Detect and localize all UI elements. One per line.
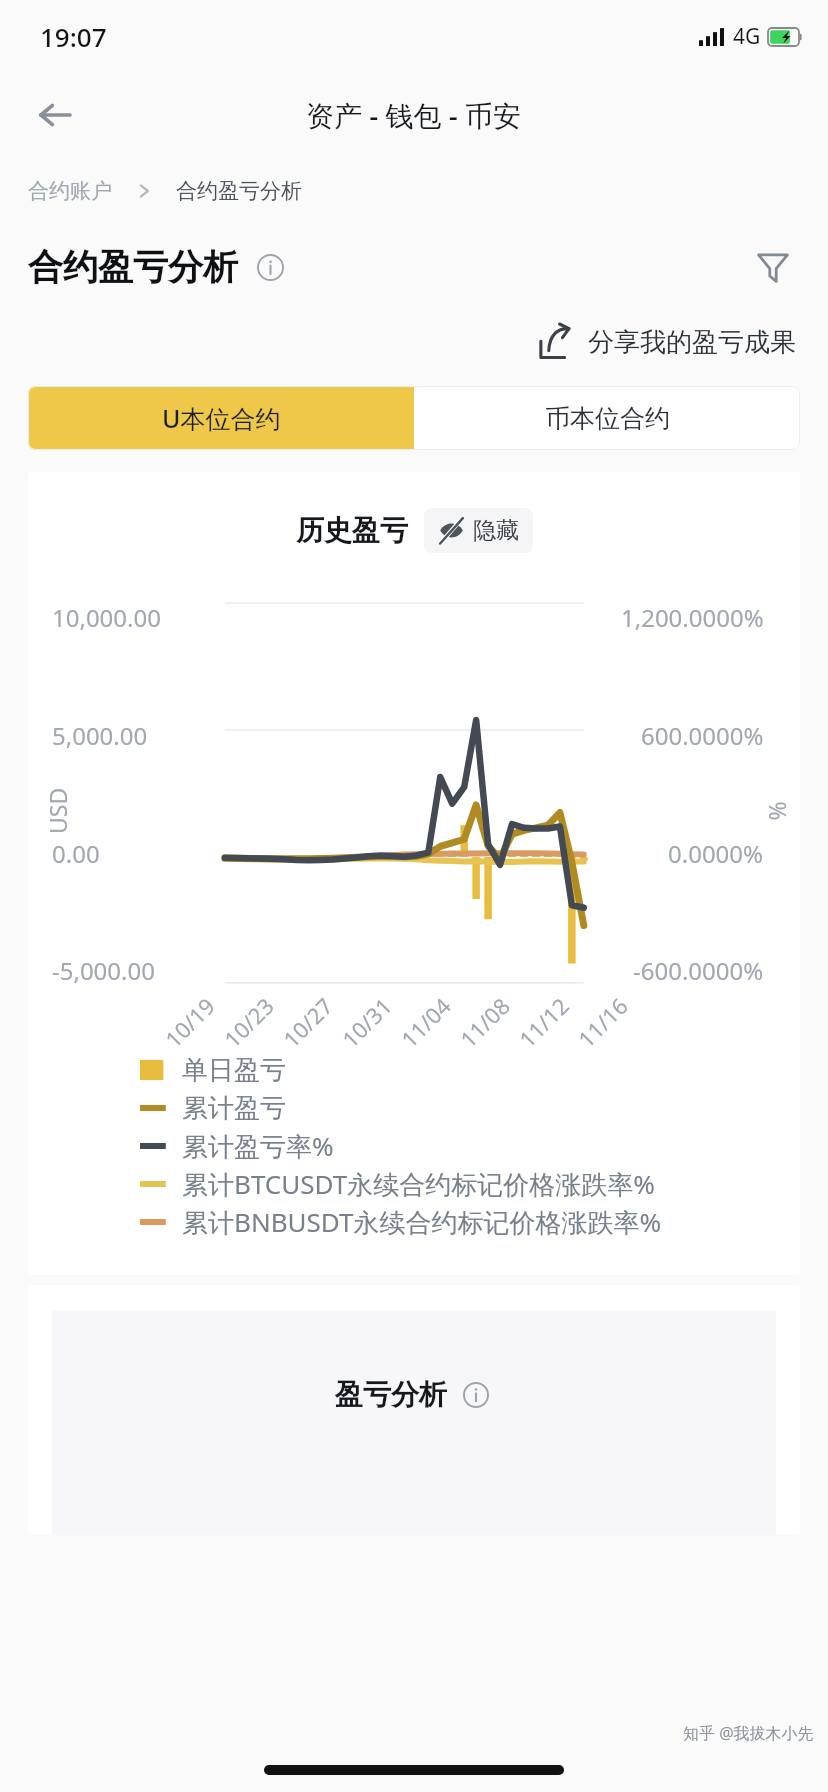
staticText: 知乎 @我拔木小先: [683, 1722, 814, 1744]
staticText: 累计盈亏率%: [182, 1128, 334, 1164]
button[interactable]: Back: [28, 88, 82, 142]
staticText: 资产 - 钱包 - 币安: [306, 96, 522, 134]
staticText: 19:07: [40, 19, 107, 54]
staticText: -600.0000%: [633, 954, 764, 987]
button[interactable]: 分享我的盈亏成果: [530, 320, 804, 364]
staticText: 0.0000%: [668, 837, 764, 870]
staticText: 单日盈亏: [182, 1054, 286, 1087]
staticText: 10/23: [217, 990, 280, 1053]
button[interactable]: 隐藏: [424, 508, 533, 553]
staticText: 11/12: [512, 990, 575, 1053]
staticText: 11/04: [394, 990, 457, 1053]
staticText: 11/16: [571, 990, 634, 1053]
staticText: 0.00: [52, 837, 100, 870]
staticText: 5,000.00: [52, 719, 148, 752]
staticText: 合约盈亏分析: [28, 245, 238, 289]
button[interactable]: 合约盈亏分析: [176, 178, 302, 204]
staticText: 合约盈亏分析: [176, 178, 302, 204]
staticText: 累计盈亏: [182, 1092, 286, 1125]
button[interactable]: Info: [252, 249, 288, 285]
staticText: 10/19: [158, 990, 221, 1053]
staticText: 4G: [733, 22, 761, 51]
button[interactable]: Info: [459, 1378, 493, 1412]
staticText: -5,000.00: [52, 954, 155, 987]
staticText: 10/27: [276, 990, 339, 1053]
staticText: USD: [42, 787, 73, 834]
staticText: 盈亏分析: [335, 1377, 447, 1412]
staticText: 历史盈亏: [296, 513, 408, 548]
staticText: 10/31: [335, 990, 398, 1053]
staticText: 1,200.0000%: [621, 601, 764, 634]
staticText: 10,000.00: [52, 601, 161, 634]
button[interactable]: Filter: [746, 240, 800, 294]
staticText: %: [760, 800, 791, 820]
staticText: 累计BNBUSDT永续合约标记价格涨跌率%: [182, 1204, 662, 1240]
staticText: 累计BTCUSDT永续合约标记价格涨跌率%: [182, 1166, 655, 1202]
staticText: U本位合约: [162, 401, 281, 435]
staticText: 合约账户: [28, 178, 112, 204]
staticText: 分享我的盈亏成果: [588, 326, 796, 359]
button[interactable]: 币本位合约: [414, 386, 800, 450]
staticText: 币本位合约: [545, 403, 670, 434]
button[interactable]: 合约账户: [28, 178, 112, 204]
button[interactable]: U本位合约: [28, 386, 414, 450]
staticText: 隐藏: [473, 516, 519, 545]
staticText: 11/08: [453, 990, 516, 1053]
staticText: 600.0000%: [641, 719, 764, 752]
